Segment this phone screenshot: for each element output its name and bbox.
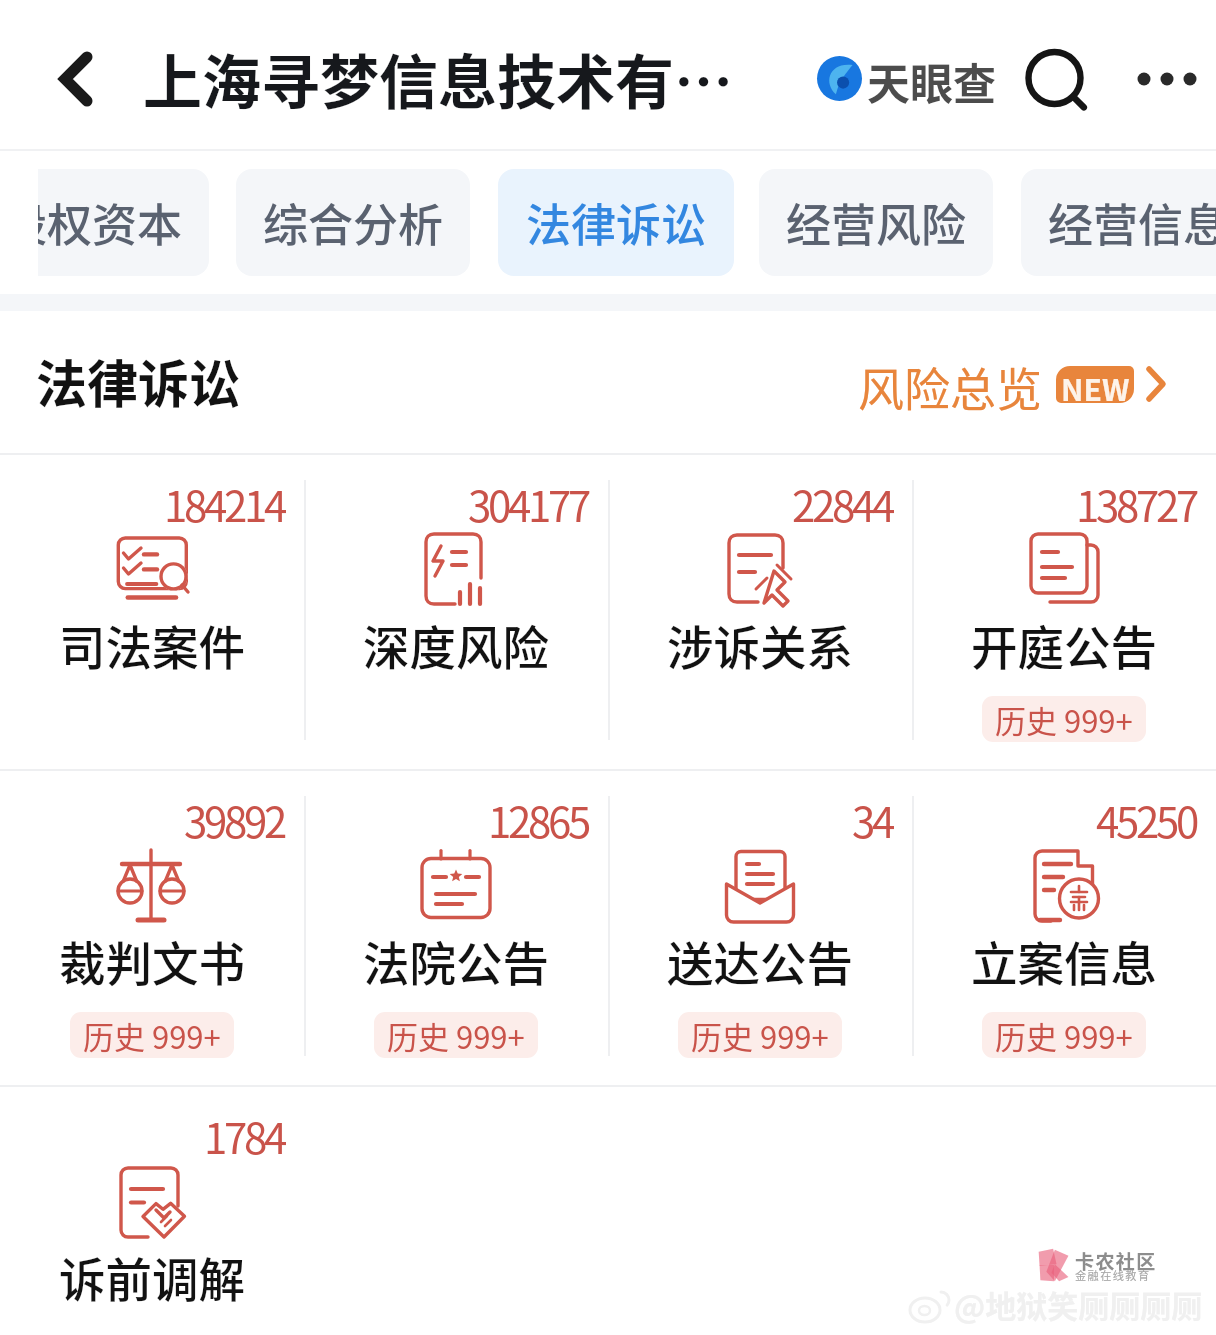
staticText: 法律诉讼 bbox=[36, 344, 241, 418]
staticText: 1784 bbox=[204, 1105, 285, 1166]
staticText: 金融在线教育 bbox=[1075, 1267, 1151, 1283]
staticText: 历史 999+ bbox=[995, 1013, 1133, 1058]
staticText: 涉诉关系 bbox=[667, 611, 853, 678]
button[interactable]: 39892 bbox=[0, 769, 304, 1085]
staticText: 天眼查 bbox=[867, 50, 996, 106]
staticText: 深度风险 bbox=[363, 611, 549, 678]
staticText: 304177 bbox=[468, 473, 589, 534]
button[interactable]: 12865 bbox=[304, 769, 608, 1085]
staticText: 送达公告 bbox=[667, 927, 853, 994]
button[interactable]: 184214 bbox=[0, 453, 304, 769]
button[interactable]: 综合分析 bbox=[236, 169, 470, 276]
staticText: 上海寻梦信息技术有… bbox=[143, 36, 734, 121]
staticText: 法律诉讼 bbox=[526, 190, 707, 255]
button[interactable]: 股权资本 bbox=[38, 169, 209, 276]
staticText: 股权资本 bbox=[38, 190, 183, 255]
staticText: 184214 bbox=[164, 473, 285, 534]
staticText: 12865 bbox=[488, 789, 589, 850]
staticText: 开庭公告 bbox=[971, 611, 1157, 678]
staticText: 风险总览 bbox=[858, 353, 1042, 415]
staticText: 司法案件 bbox=[59, 611, 245, 678]
staticText: 卡农社区 bbox=[1075, 1247, 1157, 1275]
button[interactable]: 经营风险 bbox=[759, 169, 993, 276]
staticText: NEW bbox=[1061, 366, 1130, 403]
staticText: 法院公告 bbox=[363, 927, 549, 994]
staticText: 经营信息 bbox=[1048, 190, 1216, 255]
button[interactable]: 138727 bbox=[912, 453, 1216, 769]
button[interactable]: Back bbox=[30, 30, 122, 128]
staticText: 45250 bbox=[1096, 789, 1197, 850]
button[interactable]: 304177 bbox=[304, 453, 608, 769]
staticText: 历史 999+ bbox=[995, 697, 1133, 742]
staticText: 裁判文书 bbox=[59, 927, 245, 994]
staticText: 历史 999+ bbox=[691, 1013, 829, 1058]
staticText: 经营风险 bbox=[786, 190, 967, 255]
staticText: 立案信息 bbox=[971, 927, 1157, 994]
button[interactable]: 45250 bbox=[912, 769, 1216, 1085]
staticText: 综合分析 bbox=[263, 190, 444, 255]
button[interactable]: 1784 bbox=[0, 1085, 304, 1335]
button[interactable]: 风险总览 bbox=[858, 353, 1168, 415]
staticText: @地狱笑厕厕厕厕 bbox=[954, 1282, 1203, 1327]
button[interactable]: 22844 bbox=[608, 453, 912, 769]
button[interactable]: 34 bbox=[608, 769, 912, 1085]
button[interactable]: 法律诉讼 bbox=[498, 169, 734, 276]
staticText: 34 bbox=[852, 789, 893, 850]
button[interactable]: More options bbox=[1110, 44, 1210, 114]
staticText: 22844 bbox=[792, 473, 893, 534]
staticText: 历史 999+ bbox=[387, 1013, 525, 1058]
staticText: 39892 bbox=[184, 789, 285, 850]
button[interactable]: 经营信息 bbox=[1021, 169, 1216, 276]
button[interactable]: Tianyancha bbox=[817, 50, 996, 106]
staticText: 历史 999+ bbox=[83, 1013, 221, 1058]
staticText: 诉前调解 bbox=[59, 1243, 245, 1310]
button[interactable]: Search bbox=[1008, 34, 1100, 126]
staticText: 138727 bbox=[1076, 473, 1197, 534]
